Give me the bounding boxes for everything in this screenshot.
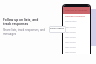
staticText: Grocery & Supplies [65, 8, 88, 11]
staticText: Follow up on lists, and track responses [3, 18, 39, 26]
staticText: Item to buy [65, 41, 76, 44]
staticText: Weekend shopping [65, 15, 85, 18]
staticText: Item to buy [65, 46, 76, 49]
staticText: Item to buy [65, 31, 76, 34]
staticText: Item to buy [65, 51, 76, 54]
staticText: Item to buy [65, 26, 76, 29]
staticText: Add an item [65, 20, 77, 23]
staticText: Share lists, track responses, and messag… [3, 28, 45, 36]
staticText: Item to buy [65, 36, 76, 39]
staticText: Sarah replied [50, 27, 64, 30]
button[interactable]: Sarah replied [49, 26, 66, 33]
